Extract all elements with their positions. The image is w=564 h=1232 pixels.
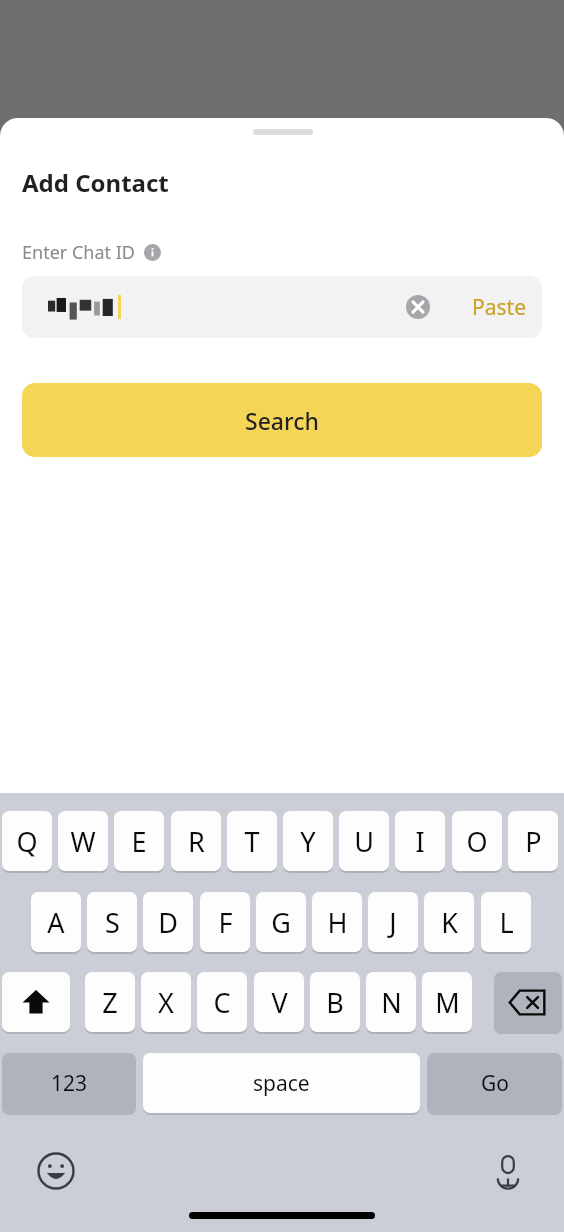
staticText: Z [102,984,118,1021]
staticText: O [466,823,488,860]
staticText: C [213,984,231,1021]
button[interactable]: A [31,892,81,952]
button[interactable]: Emoji keyboard [30,1145,82,1197]
button[interactable]: I [395,811,445,871]
button[interactable]: J [368,892,418,952]
button[interactable]: G [256,892,306,952]
button[interactable]: S [87,892,137,952]
button[interactable]: F [200,892,250,952]
button[interactable]: P [508,811,558,871]
staticText: Add Contact [22,166,169,199]
button[interactable]: Shift [2,972,70,1032]
staticText: space [253,1069,310,1098]
button[interactable]: N [366,972,416,1032]
button[interactable]: R [171,811,221,871]
staticText: D [158,904,178,941]
button[interactable]: Clear text [22,276,542,338]
button[interactable]: Backspace [494,972,562,1032]
button[interactable]: W [58,811,108,871]
button[interactable]: L [481,892,531,952]
button[interactable]: M [422,972,472,1032]
staticText: M [435,984,460,1021]
button[interactable]: Paste [472,293,526,322]
staticText: 123 [51,1069,88,1098]
button[interactable]: O [452,811,502,871]
staticText: L [499,904,514,941]
button[interactable]: Clear text [406,295,430,319]
staticText: X [158,984,174,1021]
staticText: Y [300,823,316,860]
staticText: R [188,823,205,860]
staticText: B [326,984,344,1021]
button[interactable]: Information about Chat ID [144,244,161,261]
staticText: I [415,823,425,860]
button[interactable]: B [310,972,360,1032]
staticText: A [47,904,65,941]
button[interactable]: space [143,1053,420,1113]
button[interactable]: C [197,972,247,1032]
staticText: W [70,823,96,860]
staticText: U [354,823,374,860]
button[interactable]: K [424,892,474,952]
button[interactable]: U [339,811,389,871]
staticText: E [131,823,147,860]
button[interactable]: H [312,892,362,952]
staticText: Go [481,1069,509,1098]
button[interactable]: Search [22,383,542,457]
staticText: S [105,904,120,941]
staticText: H [327,904,348,941]
staticText: K [441,904,458,941]
button[interactable]: X [141,972,191,1032]
button[interactable]: T [227,811,277,871]
staticText: Paste [472,293,526,322]
button[interactable]: E [114,811,164,871]
button[interactable]: Z [85,972,135,1032]
staticText: T [244,823,260,860]
staticText: G [271,904,291,941]
button[interactable]: Y [283,811,333,871]
staticText: P [525,823,542,860]
staticText: V [271,984,288,1021]
button[interactable]: Voice input [482,1145,534,1197]
staticText: Q [16,823,38,860]
staticText: F [218,904,233,941]
staticText: N [381,984,402,1021]
button[interactable]: Q [2,811,52,871]
staticText: Enter Chat ID [22,240,135,265]
button[interactable]: D [143,892,193,952]
button[interactable]: Go [427,1053,562,1113]
button[interactable]: V [254,972,304,1032]
staticText: Search [245,405,319,436]
staticText: J [389,904,397,941]
button[interactable]: 123 [2,1053,136,1113]
